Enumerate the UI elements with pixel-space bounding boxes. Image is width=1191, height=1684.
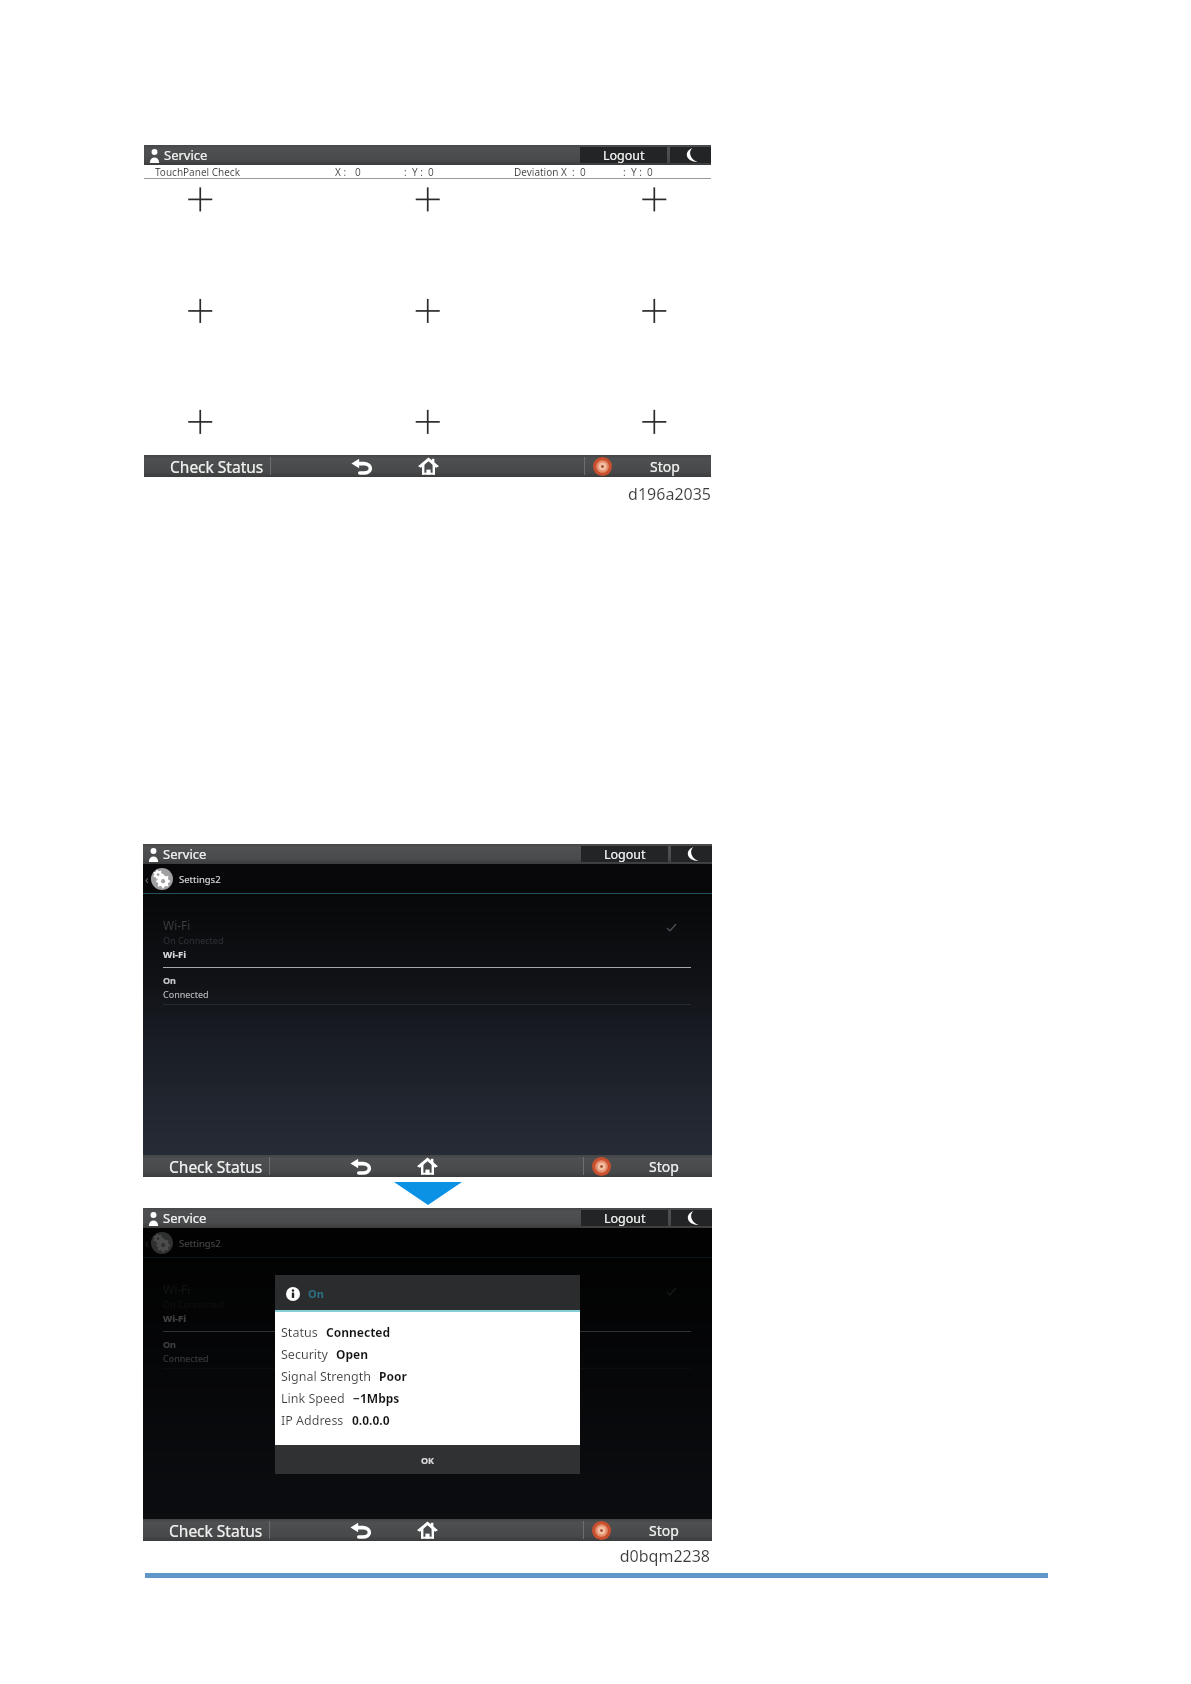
staticText: : Y : 0 <box>404 165 434 178</box>
staticText: 0.0.0.0 <box>352 1412 390 1428</box>
staticText: Connected <box>163 1352 209 1364</box>
staticText: Poor <box>379 1368 407 1384</box>
staticText: Security <box>281 1346 328 1363</box>
staticText: On <box>163 1338 176 1350</box>
staticText: Check Status <box>169 1156 263 1177</box>
staticText: OK <box>421 1454 435 1466</box>
staticText: Open <box>336 1346 369 1362</box>
staticText: Service <box>163 1209 207 1227</box>
button[interactable]: Sleep mode <box>670 147 711 163</box>
staticText: : Y : 0 <box>623 165 653 178</box>
staticText: Connected <box>326 1324 391 1340</box>
button[interactable]: Wi-Fi <box>143 1258 712 1312</box>
button[interactable]: Back <box>270 1155 452 1177</box>
button[interactable]: Home <box>394 1155 461 1177</box>
staticText: Check Status <box>170 456 264 477</box>
staticText: Logout <box>604 1210 646 1226</box>
staticText: Link Speed <box>281 1390 345 1407</box>
staticText: On Connected <box>163 934 224 946</box>
button[interactable]: Check Status <box>143 1519 269 1541</box>
button[interactable]: ‹ <box>143 1228 712 1258</box>
button[interactable]: Wi-Fi <box>143 894 712 948</box>
staticText: On <box>163 974 176 986</box>
staticText: Status <box>281 1324 318 1341</box>
button[interactable]: Logout <box>581 1210 668 1226</box>
button[interactable]: Stop <box>584 1519 710 1541</box>
staticText: Settings2 <box>179 1237 221 1250</box>
staticText: ‹ <box>145 1235 149 1251</box>
button[interactable]: On <box>143 968 712 1005</box>
staticText: Wi-Fi <box>163 1281 191 1297</box>
staticText: X : <box>335 165 347 178</box>
button[interactable]: Sleep mode <box>671 1210 712 1226</box>
staticText: Stop <box>649 1521 679 1540</box>
button[interactable]: Sleep mode <box>671 846 712 862</box>
staticText: Logout <box>603 147 645 163</box>
staticText: Stop <box>650 457 680 476</box>
button[interactable]: ‹ <box>143 864 712 894</box>
button[interactable]: Wi-Fi <box>143 1312 712 1332</box>
staticText: Signal Strength <box>281 1368 371 1385</box>
staticText: Settings2 <box>179 873 221 886</box>
staticText: On Connected <box>163 1298 224 1310</box>
staticText: Deviation X : 0 <box>514 165 586 178</box>
button[interactable]: Home <box>395 455 462 477</box>
staticText: Connected <box>163 988 209 1000</box>
staticText: Service <box>164 146 208 164</box>
staticText: Check Status <box>169 1520 263 1541</box>
staticText: d0bqm2238 <box>618 1545 710 1567</box>
button[interactable]: Check Status <box>143 1155 269 1177</box>
button[interactable]: Logout <box>581 846 668 862</box>
staticText: d196a2035 <box>620 483 711 505</box>
staticText: 0 <box>355 165 361 178</box>
button[interactable]: Logout <box>580 147 667 163</box>
staticText: ‹ <box>145 871 149 887</box>
staticText: IP Address <box>281 1412 344 1429</box>
staticText: Wi-Fi <box>163 1312 187 1325</box>
button[interactable]: Back <box>271 455 453 477</box>
button[interactable]: Stop <box>585 455 711 477</box>
staticText: Wi-Fi <box>163 948 187 961</box>
button[interactable]: Wi-Fi <box>143 948 712 968</box>
staticText: −1Mbps <box>353 1390 400 1406</box>
staticText: Wi-Fi <box>163 917 191 933</box>
button[interactable]: Check Status <box>144 455 270 477</box>
staticText: Stop <box>649 1157 679 1176</box>
button[interactable]: Back <box>270 1519 452 1541</box>
staticText: On <box>308 1286 324 1301</box>
button[interactable]: Home <box>394 1519 461 1541</box>
button[interactable]: Stop <box>584 1155 710 1177</box>
button[interactable]: OK <box>275 1445 580 1474</box>
staticText: TouchPanel Check <box>155 165 241 178</box>
staticText: Service <box>163 845 207 863</box>
button[interactable]: On <box>143 1332 712 1369</box>
staticText: Logout <box>604 846 646 862</box>
